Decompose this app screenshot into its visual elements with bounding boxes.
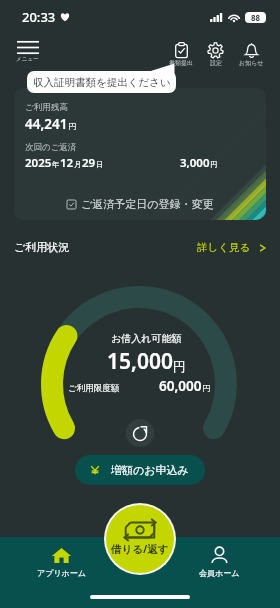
staticText: 借りる/返す: [111, 542, 169, 556]
staticText: 44,241: [25, 115, 68, 133]
button[interactable]: 詳しく見る: [197, 241, 266, 254]
staticText: 円: [210, 160, 218, 169]
staticText: メニュー: [16, 56, 39, 63]
button[interactable]: 書類提出: [164, 42, 198, 67]
staticText: 20:33: [22, 8, 56, 26]
staticText: 次回のご返済: [25, 142, 77, 153]
staticText: ご利用限度額: [68, 383, 120, 394]
staticText: 12: [60, 155, 74, 171]
staticText: ご利用残高: [25, 102, 68, 113]
staticText: 3,000: [180, 155, 210, 171]
button[interactable]: 更新: [126, 419, 154, 447]
button[interactable]: 会員ホーム: [172, 545, 266, 578]
staticText: ご返済予定日の登録・変更: [81, 197, 214, 211]
button[interactable]: 収入証明書類を提出ください: [27, 71, 176, 93]
staticText: 29: [82, 155, 96, 171]
staticText: 日: [96, 160, 104, 169]
button[interactable]: 借りる/返す: [106, 505, 174, 573]
staticText: 2025: [25, 155, 52, 171]
staticText: アプリホーム: [37, 568, 86, 578]
staticText: 設定: [210, 59, 222, 67]
staticText: 年: [52, 160, 60, 169]
button[interactable]: 設定: [198, 42, 232, 67]
staticText: 会員ホーム: [199, 568, 240, 578]
button[interactable]: ご返済予定日の登録・変更: [14, 188, 266, 220]
staticText: 書類提出: [169, 59, 193, 67]
button[interactable]: メニュー: [16, 40, 39, 63]
staticText: お知らせ: [239, 59, 264, 67]
button[interactable]: ご利用残高: [14, 88, 266, 220]
staticText: 月: [74, 160, 82, 169]
staticText: お借入れ可能額: [111, 332, 182, 345]
button[interactable]: 増額のお申込み: [75, 455, 205, 485]
staticText: 円: [173, 358, 186, 374]
button[interactable]: アプリホーム: [14, 545, 108, 578]
staticText: 60,000: [159, 377, 202, 395]
staticText: 増額のお申込み: [111, 463, 189, 477]
staticText: 円: [68, 121, 76, 131]
staticText: 88: [251, 12, 261, 23]
staticText: 詳しく見る: [197, 241, 251, 254]
staticText: 円: [202, 383, 210, 393]
staticText: 収入証明書類を提出ください: [33, 76, 171, 89]
staticText: ご利用状況: [14, 240, 70, 254]
button[interactable]: お知らせ: [234, 42, 268, 67]
staticText: 15,000: [107, 347, 173, 376]
